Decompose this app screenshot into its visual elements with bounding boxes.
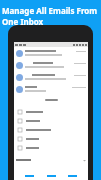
button[interactable]: Email message: [14, 83, 88, 95]
button[interactable]: Trash: [14, 134, 88, 143]
button[interactable]: Select account: [14, 156, 88, 164]
button[interactable]: Drafts: [14, 116, 88, 125]
button[interactable]: Spam: [14, 143, 88, 152]
button[interactable]: Send Mail: [14, 125, 88, 134]
button[interactable]: Settings: [67, 174, 78, 178]
button[interactable]: Home: [24, 174, 35, 178]
button[interactable]: INBOX: [14, 107, 88, 116]
staticText: Manage All Emails From One Inbox: [2, 5, 101, 27]
button[interactable]: Mail: [46, 174, 57, 178]
button[interactable]: Email message: [14, 59, 88, 71]
button[interactable]: Email message: [14, 47, 88, 59]
button[interactable]: Email message: [14, 71, 88, 83]
